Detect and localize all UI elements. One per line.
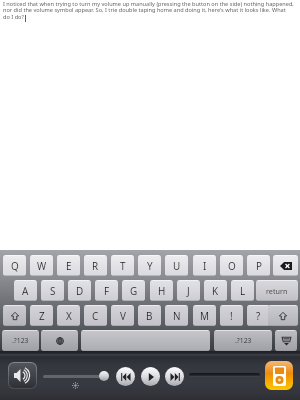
button[interactable]: Next track [165,367,184,386]
button[interactable]: J [177,280,200,301]
button[interactable]: N [165,305,188,326]
button[interactable]: R [84,255,107,276]
staticText: K [212,284,219,297]
staticText: ! [230,309,233,322]
button[interactable] [81,330,210,351]
button[interactable]: C [84,305,107,326]
staticText: W [37,259,47,272]
button[interactable] [3,305,26,326]
button[interactable]: Q [3,255,26,276]
button[interactable]: T [111,255,134,276]
staticText: X [66,309,72,322]
button[interactable]: S [41,280,64,301]
staticText: .?123 [235,336,252,345]
button[interactable]: E [57,255,80,276]
button[interactable]: U [165,255,188,276]
button[interactable]: Brightness [99,371,109,381]
staticText: Y [147,259,153,272]
staticText: G [130,284,138,297]
staticText: S [50,284,56,297]
staticText: A [22,284,29,297]
staticText: I [203,259,207,272]
button[interactable]: Previous track [116,367,135,386]
button[interactable]: .?123 [214,330,272,351]
staticText: P [256,259,262,272]
button[interactable]: A [14,280,37,301]
staticText: V [120,309,126,322]
button[interactable]: Y [138,255,161,276]
staticText: H [158,284,166,297]
staticText: L [240,284,246,297]
button[interactable]: M [193,305,216,326]
staticText: N [173,309,181,322]
button[interactable]: I [193,255,216,276]
staticText: C [92,309,99,322]
staticText: E [66,259,72,272]
button[interactable]: Music [265,361,293,390]
staticText: T [120,259,126,272]
button[interactable]: Play [141,367,160,386]
button[interactable]: X [57,305,80,326]
button[interactable]: B [138,305,161,326]
button[interactable]: F [95,280,118,301]
button[interactable] [273,255,298,276]
button[interactable] [41,330,78,351]
button[interactable]: Z [30,305,53,326]
button[interactable]: O [220,255,243,276]
button[interactable]: return [256,280,298,301]
button[interactable]: P [247,255,270,276]
button[interactable]: L [231,280,254,301]
button[interactable]: W [30,255,53,276]
staticText: Z [39,309,45,322]
staticText: R [92,259,99,272]
button[interactable] [275,330,297,351]
staticText: Q [11,259,19,272]
staticText: D [76,284,84,297]
button[interactable]: V [111,305,134,326]
button[interactable]: G [122,280,145,301]
button[interactable]: ? [247,305,270,326]
button[interactable]: .?123 [2,330,39,351]
staticText: return [266,286,288,296]
button[interactable]: Mute [9,363,36,388]
staticText: U [173,259,181,272]
staticText: B [146,309,153,322]
staticText: I noticed that when trying to turn my vo… [3,0,294,21]
button[interactable]: D [68,280,91,301]
staticText: ? [256,309,261,322]
button[interactable]: K [204,280,227,301]
staticText: J [187,284,190,297]
staticText: M [200,309,209,322]
staticText: F [104,284,110,297]
staticText: .?123 [12,336,29,345]
button[interactable] [268,305,298,326]
button[interactable]: ! [220,305,243,326]
staticText: O [228,259,236,272]
button[interactable]: H [150,280,173,301]
